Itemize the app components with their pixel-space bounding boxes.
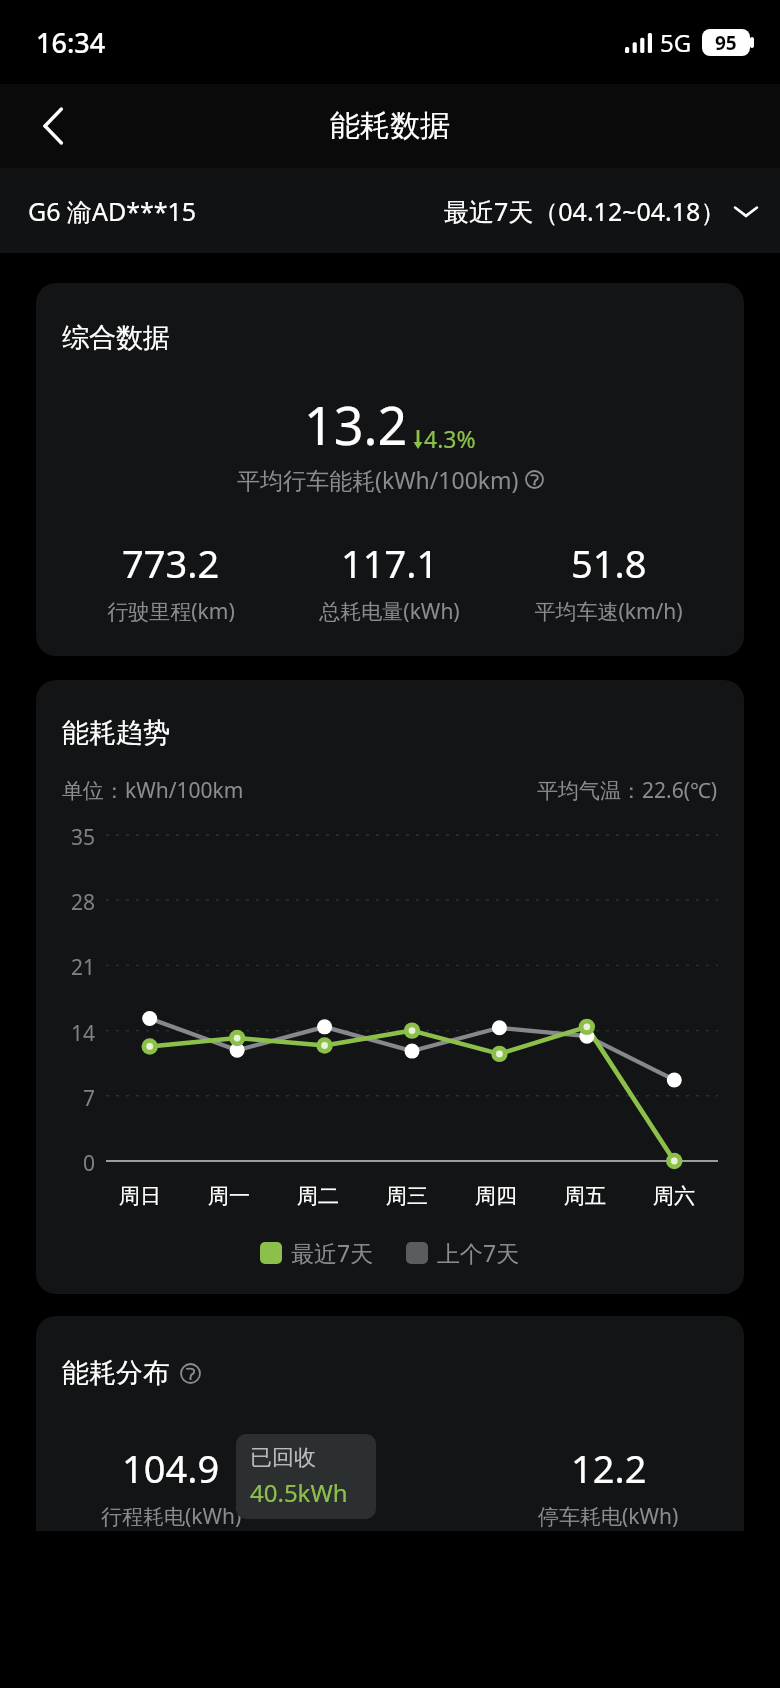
staticText: 能耗分布 — [62, 1356, 170, 1390]
staticText: 773.2 — [122, 537, 220, 589]
button[interactable]: 能耗趋势 — [36, 680, 744, 1294]
button[interactable]: 117.1 — [280, 537, 499, 626]
staticText: 21 — [71, 953, 96, 977]
staticText: 7 — [83, 1084, 96, 1108]
staticText: 13.2 — [304, 389, 408, 460]
staticText: 已回收 — [250, 1444, 316, 1472]
staticText: 16:34 — [36, 24, 106, 61]
staticText: 总耗电量(kWh) — [319, 597, 460, 626]
staticText: 平均行车能耗(kWh/100km) — [237, 464, 519, 495]
staticText: 0 — [83, 1149, 96, 1173]
button[interactable]: 51.8 — [499, 537, 718, 626]
staticText: 最近7天（04.12~04.18） — [444, 194, 726, 228]
staticText: 周四 — [475, 1183, 517, 1209]
staticText: 12.2 — [571, 1442, 647, 1494]
staticText: 上个7天 — [437, 1237, 520, 1268]
staticText: 95 — [715, 30, 737, 56]
staticText: 单位：kWh/100km — [62, 776, 244, 805]
staticText: 14 — [71, 1019, 96, 1043]
staticText: 周三 — [386, 1183, 428, 1209]
staticText: 能耗数据 — [330, 107, 450, 145]
staticText: 周五 — [564, 1183, 606, 1209]
button[interactable]: 能耗分布 — [36, 1316, 744, 1531]
button[interactable]: Back — [22, 95, 84, 157]
staticText: 能耗趋势 — [62, 716, 170, 750]
staticText: 综合数据 — [62, 321, 170, 355]
staticText: 周六 — [653, 1183, 695, 1209]
button[interactable]: 上个7天 — [406, 1237, 520, 1268]
button[interactable]: 综合数据 — [36, 283, 744, 656]
button[interactable]: 773.2 — [62, 537, 280, 626]
staticText: 最近7天 — [291, 1237, 374, 1268]
staticText: 周二 — [297, 1183, 339, 1209]
staticText: 周日 — [119, 1183, 161, 1209]
staticText: 35 — [71, 823, 96, 847]
staticText: 4.3% — [424, 423, 476, 454]
staticText: 28 — [71, 888, 96, 912]
staticText: 51.8 — [571, 537, 647, 589]
staticText: 平均车速(km/h) — [534, 597, 683, 626]
staticText: G6 渝AD***15 — [28, 194, 197, 228]
staticText: 停车耗电(kWh) — [538, 1502, 679, 1531]
staticText: 5G — [660, 26, 692, 59]
staticText: 行程耗电(kWh) — [101, 1502, 242, 1531]
staticText: 行驶里程(km) — [107, 597, 235, 626]
button[interactable]: 最近7天（04.12~04.18） — [444, 194, 758, 228]
staticText: 40.5kWh — [250, 1476, 348, 1509]
staticText: 周一 — [208, 1183, 250, 1209]
button[interactable]: 最近7天 — [260, 1237, 374, 1268]
staticText: 104.9 — [122, 1442, 220, 1494]
staticText: 平均气温：22.6(℃) — [537, 776, 718, 805]
staticText: 117.1 — [341, 537, 439, 589]
